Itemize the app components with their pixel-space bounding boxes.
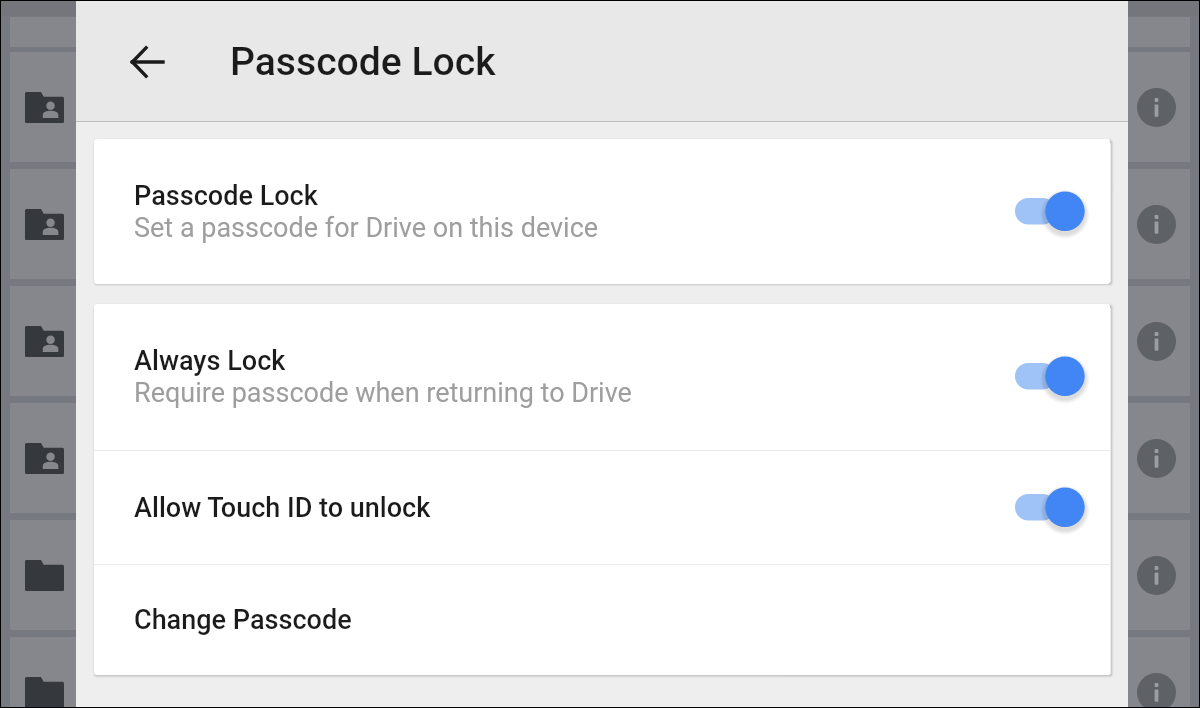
staticText: Allow Touch ID to unlock [134, 492, 1015, 524]
staticText: Always Lock [134, 345, 286, 377]
button[interactable]: Passcode Lock [94, 139, 1110, 284]
button[interactable]: Allow Touch ID to unlock [94, 451, 1110, 564]
button[interactable]: Always Lock [94, 304, 1110, 450]
button[interactable] [10, 637, 1190, 707]
button[interactable]: Toggle switch, on [1015, 485, 1085, 531]
button[interactable] [10, 403, 1190, 513]
button[interactable]: Toggle switch, on [1015, 189, 1085, 235]
button[interactable] [10, 520, 1190, 630]
button[interactable] [10, 169, 1190, 279]
staticText: Set a passcode for Drive on this device [134, 212, 599, 244]
staticText: Require passcode when returning to Drive [134, 377, 632, 409]
staticText: Passcode Lock [230, 39, 496, 85]
button[interactable]: Change Passcode [94, 565, 1110, 674]
staticText: Passcode Lock [134, 180, 318, 212]
button[interactable] [10, 52, 1190, 162]
button[interactable]: Back [115, 30, 179, 94]
staticText: Change Passcode [134, 604, 1110, 636]
button[interactable] [10, 286, 1190, 396]
button[interactable]: Toggle switch, on [1015, 354, 1085, 400]
button[interactable] [10, 17, 1190, 47]
